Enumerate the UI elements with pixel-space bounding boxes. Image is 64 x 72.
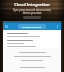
button[interactable] — [5, 39, 59, 48]
button[interactable]: Connect account — [18, 24, 46, 29]
button[interactable]: More options — [55, 24, 60, 29]
staticText: Sync your account across every device yo… — [3, 8, 61, 14]
button[interactable] — [5, 55, 59, 58]
button[interactable] — [5, 66, 59, 69]
button[interactable] — [5, 51, 59, 54]
staticText: Cloud Integration — [3, 2, 61, 7]
button[interactable] — [5, 59, 59, 62]
staticText: Connect account — [22, 25, 42, 28]
button[interactable] — [5, 32, 59, 38]
button[interactable]: Read more — [23, 16, 41, 19]
button[interactable]: Menu — [4, 24, 9, 29]
